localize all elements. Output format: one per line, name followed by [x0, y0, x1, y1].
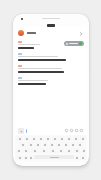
button[interactable]: More: [77, 30, 84, 37]
button[interactable]: [22, 148, 30, 153]
button[interactable]: More: [15, 27, 87, 39]
button[interactable]: [42, 142, 48, 147]
button[interactable]: [63, 142, 69, 147]
button[interactable]: GIF: [74, 128, 79, 133]
button[interactable]: [52, 136, 58, 141]
button[interactable]: [73, 136, 79, 141]
button[interactable]: Voice: [64, 128, 69, 133]
button[interactable]: [40, 148, 48, 153]
button[interactable]: [31, 136, 37, 141]
button[interactable]: [18, 41, 40, 49]
button[interactable]: [64, 41, 84, 46]
button[interactable]: [26, 128, 64, 134]
button[interactable]: [73, 148, 80, 153]
button[interactable]: [49, 148, 56, 153]
button[interactable]: [18, 65, 84, 73]
button[interactable]: [65, 148, 72, 153]
button[interactable]: Enter: [80, 155, 86, 160]
button[interactable]: Comma: [24, 155, 28, 160]
button[interactable]: [38, 136, 44, 141]
button[interactable]: [45, 136, 51, 141]
button[interactable]: [80, 136, 86, 141]
button[interactable]: [27, 142, 34, 147]
button[interactable]: [66, 136, 72, 141]
button[interactable]: [24, 136, 30, 141]
button[interactable]: [56, 142, 62, 147]
button[interactable]: [31, 148, 39, 153]
button[interactable]: Backspace: [81, 148, 86, 153]
button[interactable]: Settings: [29, 155, 33, 160]
button[interactable]: Camera: [18, 128, 24, 134]
button[interactable]: [70, 142, 76, 147]
button[interactable]: Emoji: [69, 128, 74, 133]
button[interactable]: [59, 136, 65, 141]
button[interactable]: [34, 155, 74, 159]
button[interactable]: [35, 142, 41, 147]
button[interactable]: [18, 53, 84, 61]
button[interactable]: [49, 142, 55, 147]
button[interactable]: [57, 148, 64, 153]
button[interactable]: Shift: [16, 148, 21, 153]
button[interactable]: Period: [75, 155, 79, 160]
button[interactable]: [18, 77, 84, 85]
button[interactable]: [16, 136, 23, 141]
button[interactable]: [77, 142, 83, 147]
button[interactable]: Attach: [79, 128, 84, 133]
button[interactable]: [19, 142, 26, 147]
button[interactable]: Numbers: [16, 155, 23, 160]
